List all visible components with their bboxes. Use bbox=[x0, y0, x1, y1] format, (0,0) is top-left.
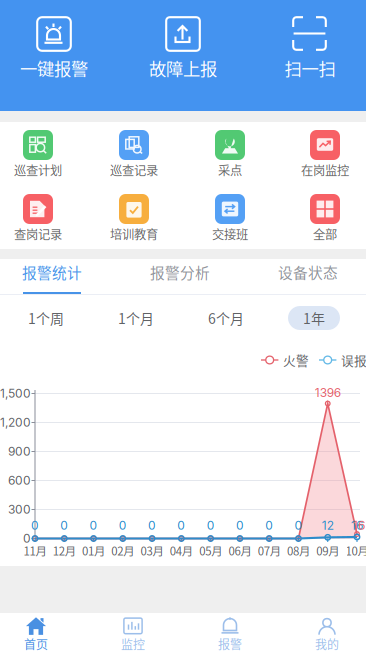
staticText: 6个月 bbox=[208, 308, 244, 328]
button[interactable]: 设备状态 bbox=[253, 261, 363, 294]
staticText: 设备状态 bbox=[278, 261, 338, 283]
staticText: 900 bbox=[8, 444, 31, 459]
staticText: 全部 bbox=[313, 225, 337, 243]
button[interactable]: 我的 bbox=[282, 615, 366, 653]
staticText: 一键报警 bbox=[20, 55, 88, 81]
staticText: 报警分析 bbox=[150, 261, 210, 283]
staticText: 0 bbox=[89, 518, 97, 533]
staticText: 扫一扫 bbox=[284, 55, 335, 81]
staticText: 1396 bbox=[315, 385, 341, 400]
button[interactable]: 报警统计 bbox=[0, 261, 107, 294]
staticText: 报警 bbox=[218, 635, 242, 653]
button[interactable]: 一键报警 bbox=[0, 16, 109, 77]
staticText: 1,500 bbox=[0, 386, 31, 401]
staticText: 12 bbox=[322, 518, 334, 533]
staticText: 在岗监控 bbox=[301, 161, 349, 179]
staticText: 600 bbox=[8, 473, 31, 488]
button[interactable]: 查岗记录 bbox=[0, 194, 81, 241]
button[interactable]: 全部 bbox=[282, 194, 366, 241]
button[interactable]: 报警分析 bbox=[125, 261, 235, 294]
button[interactable]: 故障上报 bbox=[128, 16, 238, 77]
staticText: 首页 bbox=[24, 635, 48, 653]
staticText: 16 bbox=[351, 518, 363, 533]
staticText: 04月 bbox=[170, 542, 193, 559]
button[interactable]: 监控 bbox=[88, 615, 178, 653]
staticText: 0 bbox=[23, 531, 31, 546]
staticText: 0 bbox=[60, 518, 68, 533]
staticText: 采点 bbox=[218, 161, 242, 179]
staticText: 我的 bbox=[315, 635, 339, 653]
staticText: 0 bbox=[265, 518, 273, 533]
button[interactable]: 首页 bbox=[0, 615, 81, 653]
staticText: 09月 bbox=[316, 542, 339, 559]
staticText: 0 bbox=[31, 518, 39, 533]
staticText: 0 bbox=[207, 518, 215, 533]
staticText: 1,200 bbox=[0, 415, 31, 430]
staticText: 0 bbox=[119, 518, 127, 533]
staticText: 03月 bbox=[141, 542, 164, 559]
staticText: 0 bbox=[148, 518, 156, 533]
staticText: 巡查计划 bbox=[14, 161, 62, 179]
button[interactable]: 采点 bbox=[187, 130, 273, 177]
button[interactable]: 培训教育 bbox=[91, 194, 177, 241]
staticText: 1年 bbox=[303, 308, 325, 328]
button[interactable]: 交接班 bbox=[187, 194, 273, 241]
staticText: 报警统计 bbox=[22, 261, 82, 283]
button[interactable]: 1个月 bbox=[110, 306, 162, 330]
staticText: 06月 bbox=[228, 542, 251, 559]
staticText: 12月 bbox=[53, 542, 76, 559]
staticText: 故障上报 bbox=[149, 55, 217, 81]
staticText: 11月 bbox=[23, 542, 46, 559]
staticText: 查岗记录 bbox=[14, 225, 62, 243]
staticText: 08月 bbox=[287, 542, 310, 559]
staticText: 300 bbox=[8, 502, 31, 517]
staticText: 16 bbox=[353, 518, 365, 533]
button[interactable]: 1年 bbox=[288, 306, 340, 330]
button[interactable]: 报警 bbox=[185, 615, 275, 653]
button[interactable]: 巡查计划 bbox=[0, 130, 81, 177]
staticText: 误报 bbox=[341, 351, 366, 369]
staticText: 0 bbox=[177, 518, 185, 533]
staticText: 10月 bbox=[345, 542, 366, 559]
staticText: 火警 bbox=[283, 351, 309, 369]
staticText: 07月 bbox=[258, 542, 281, 559]
staticText: 培训教育 bbox=[110, 225, 158, 243]
button[interactable]: 6个月 bbox=[200, 306, 252, 330]
staticText: 1个月 bbox=[118, 308, 154, 328]
staticText: 0 bbox=[236, 518, 244, 533]
staticText: 0 bbox=[294, 518, 302, 533]
staticText: 01月 bbox=[82, 542, 105, 559]
staticText: 巡查记录 bbox=[110, 161, 158, 179]
button[interactable]: 扫一扫 bbox=[255, 16, 365, 77]
staticText: 监控 bbox=[121, 635, 145, 653]
staticText: 1个周 bbox=[28, 308, 64, 328]
button[interactable]: 在岗监控 bbox=[282, 130, 366, 177]
staticText: 02月 bbox=[111, 542, 134, 559]
staticText: 交接班 bbox=[212, 225, 248, 243]
staticText: 05月 bbox=[199, 542, 222, 559]
button[interactable]: 1个周 bbox=[20, 306, 72, 330]
button[interactable]: 巡查记录 bbox=[91, 130, 177, 177]
